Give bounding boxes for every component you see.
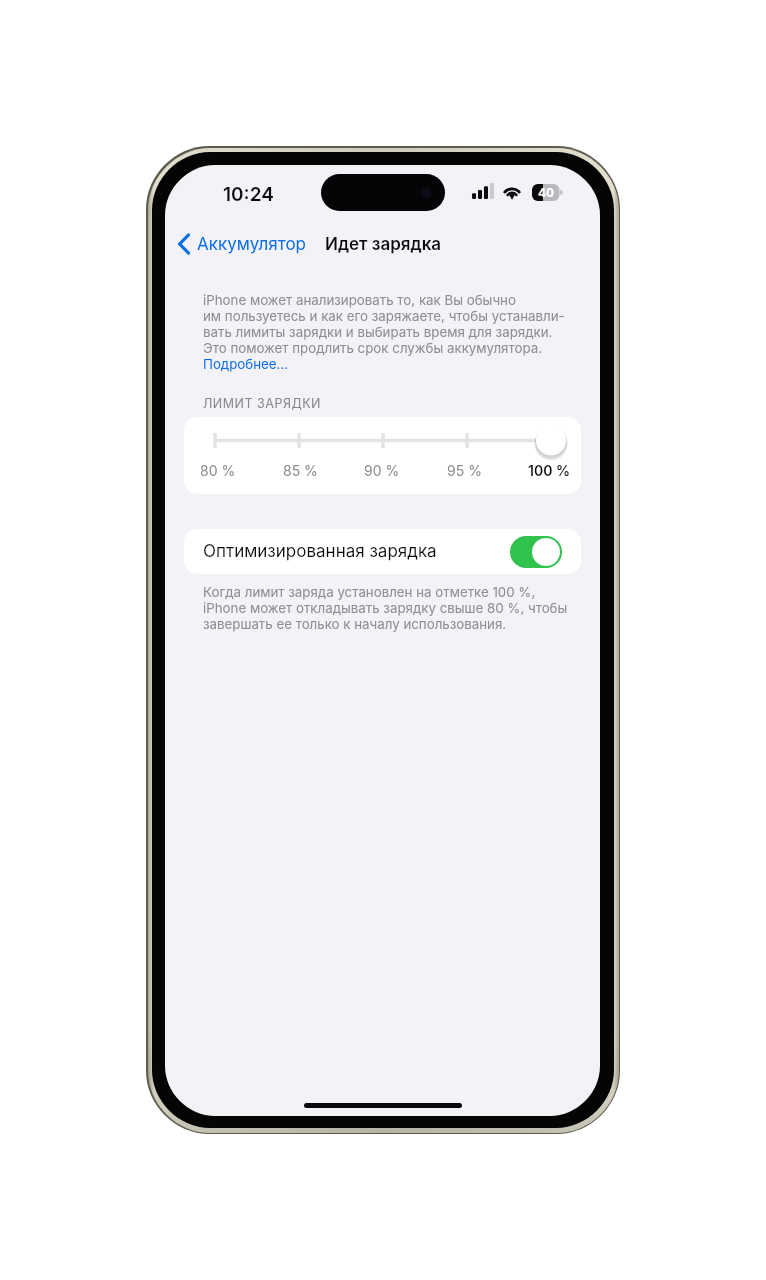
staticText: Оптимизированная зарядка [203,541,437,562]
button[interactable]: Оптимизированная зарядка [184,529,581,574]
staticText: iPhone может анализировать то, как Вы об… [203,292,565,356]
button[interactable]: Оптимизированная зарядка [510,536,562,568]
staticText: 95 % [447,462,482,479]
button[interactable]: Назад к разделу Аккумулятор [165,229,311,259]
staticText: 100 % [528,462,570,479]
button[interactable]: Подробнее... [203,356,289,372]
staticText: 80 % [200,462,236,479]
staticText: ЛИМИТ ЗАРЯДКИ [203,396,321,411]
staticText: 10:24 [223,183,274,206]
staticText: Аккумулятор [197,234,307,255]
staticText: 40 [538,185,555,200]
staticText: 85 % [283,462,318,479]
staticText: 90 % [364,462,400,479]
staticText: Когда лимит заряда установлен на отметке… [203,584,568,632]
staticText: Идет зарядка [325,234,442,255]
